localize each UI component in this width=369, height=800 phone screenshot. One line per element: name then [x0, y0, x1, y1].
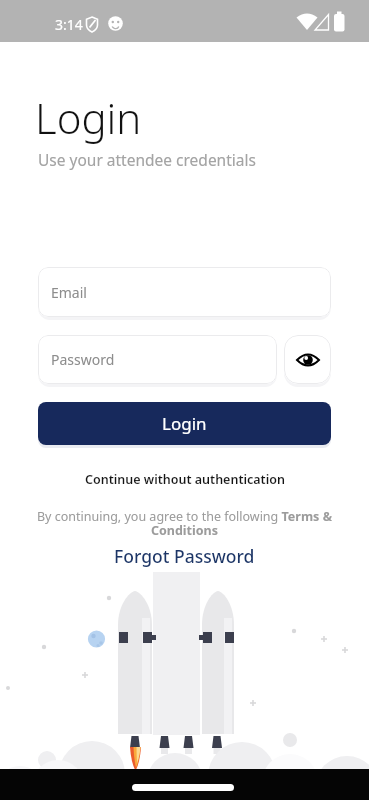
staticText: Use your attendee credentials — [38, 149, 256, 170]
button[interactable]: Login — [38, 402, 331, 445]
staticText: Password — [51, 350, 115, 369]
button[interactable]: Email — [38, 267, 331, 317]
button[interactable]: Password — [38, 335, 277, 384]
button[interactable]: Continue without authentication — [85, 471, 285, 488]
staticText: Login — [35, 89, 142, 146]
staticText: Email — [51, 283, 87, 302]
staticText: 3:14 — [55, 15, 83, 34]
staticText: Login — [162, 412, 207, 435]
button[interactable]: Forgot Password — [114, 544, 255, 568]
staticText: By continuing, you agree to the followin… — [0, 508, 369, 539]
button[interactable] — [284, 335, 331, 384]
